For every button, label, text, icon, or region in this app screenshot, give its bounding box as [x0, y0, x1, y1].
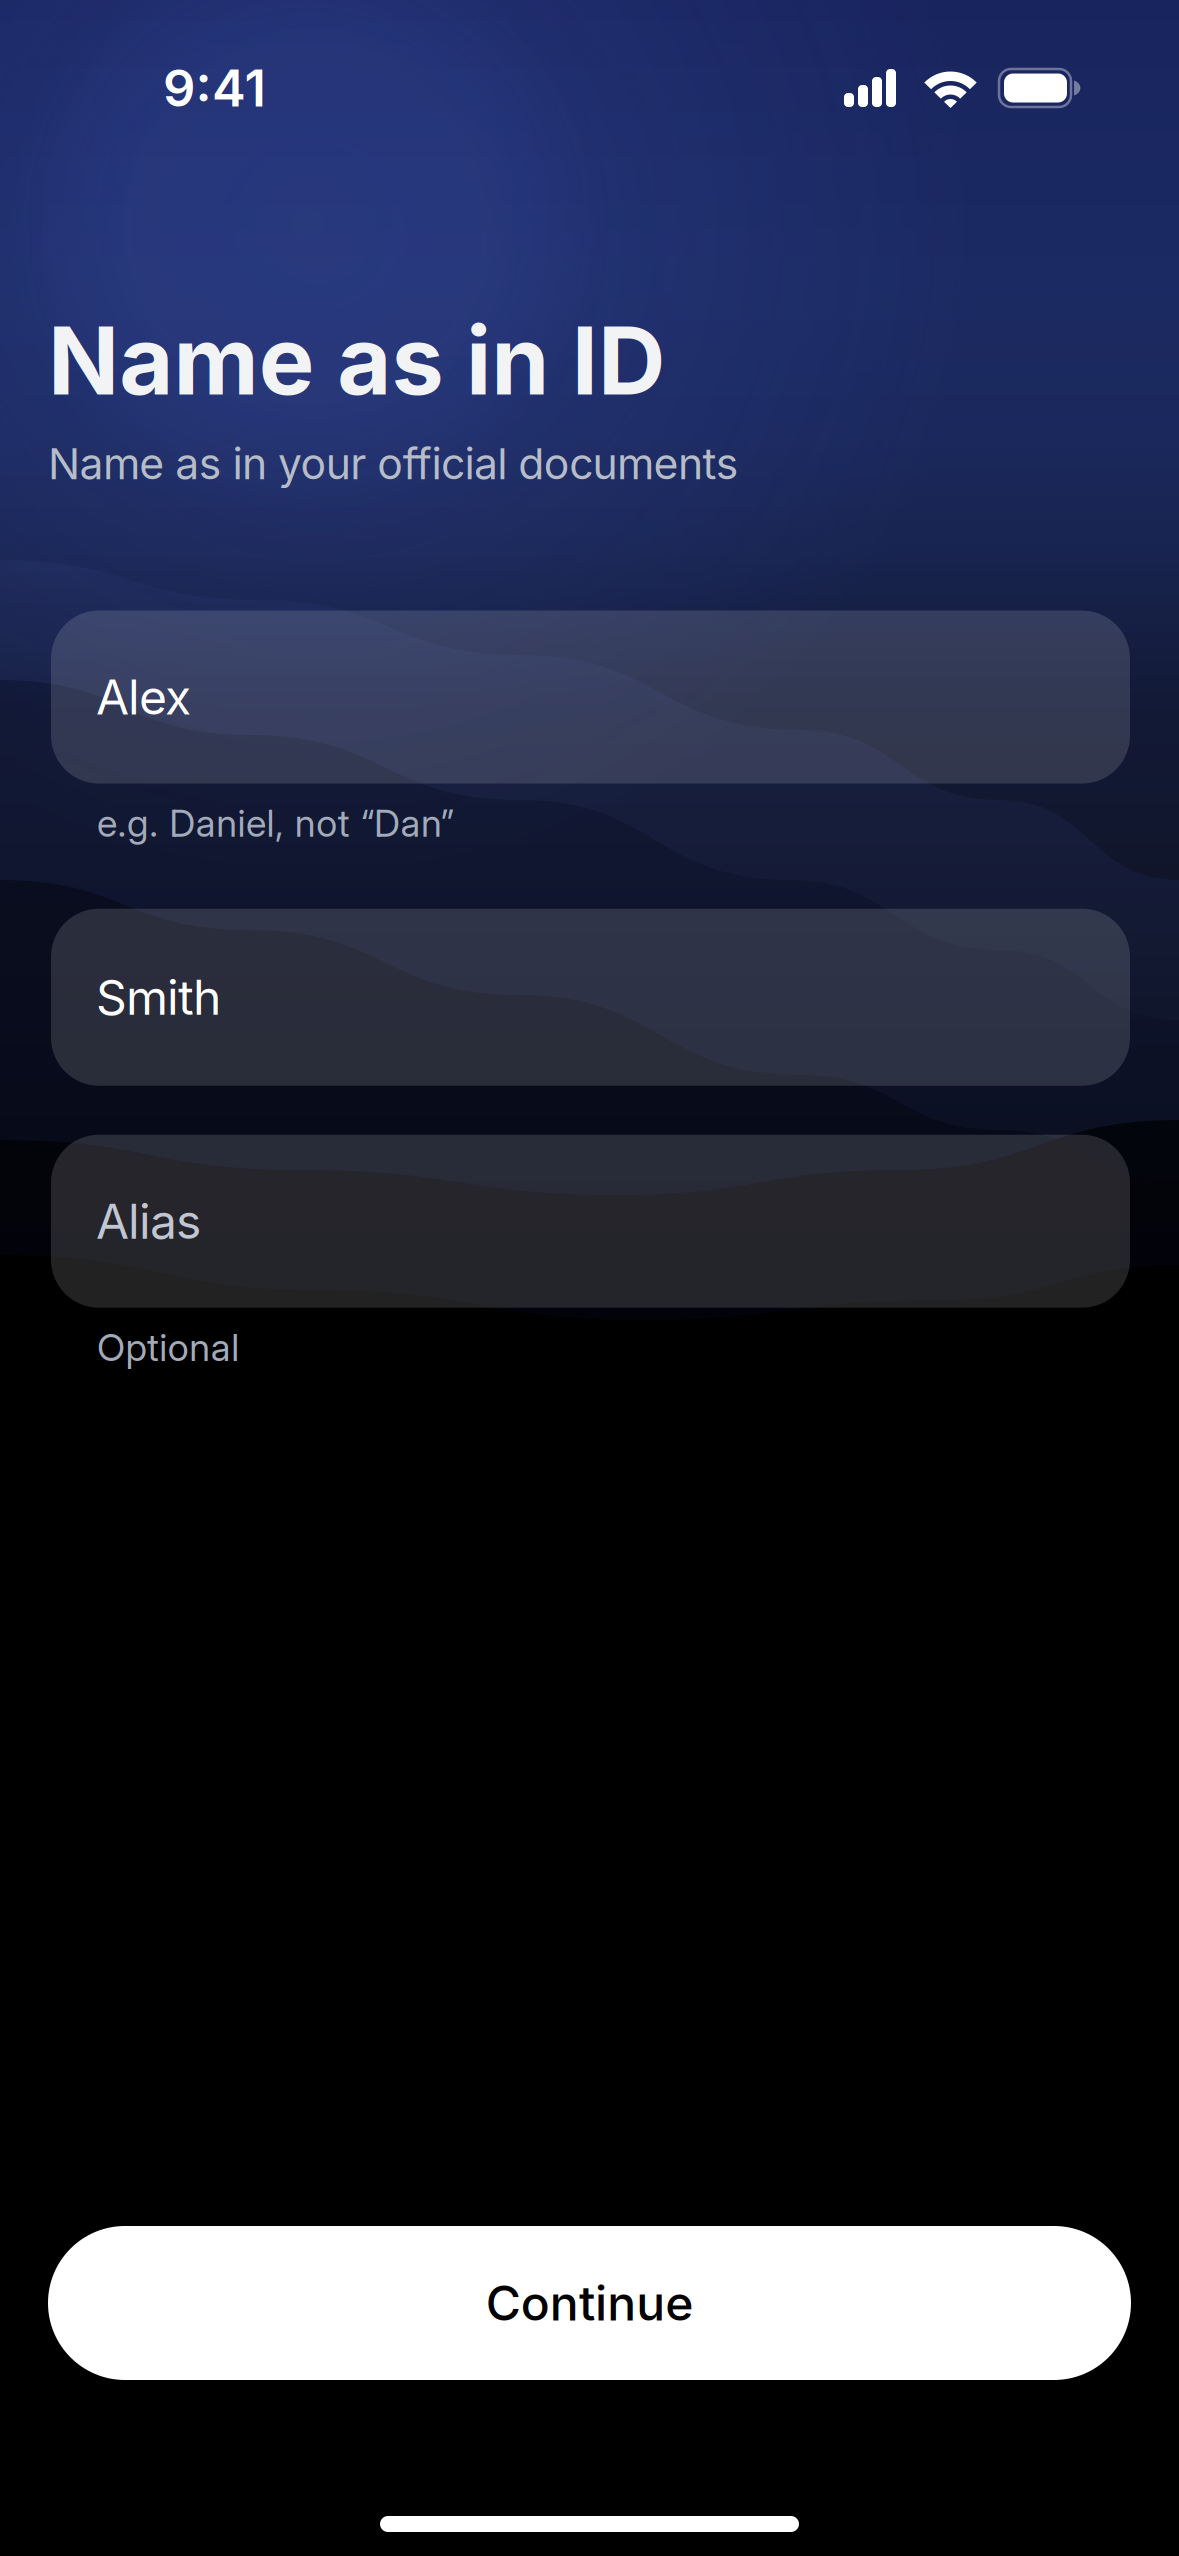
button[interactable]: Continue: [48, 2226, 1131, 2380]
staticText: e.g. Daniel, not “Dan”: [97, 801, 454, 846]
staticText: Alex: [96, 668, 191, 726]
staticText: Continue: [486, 2274, 693, 2332]
button[interactable]: Alias: [51, 1135, 1130, 1308]
staticText: Smith: [96, 968, 221, 1026]
button[interactable]: Alex: [51, 611, 1130, 784]
staticText: 9:41: [163, 57, 265, 119]
staticText: Name as in your official documents: [48, 438, 739, 489]
staticText: Name as in ID: [48, 304, 665, 417]
button[interactable]: Smith: [51, 909, 1130, 1086]
staticText: Optional: [97, 1325, 239, 1370]
staticText: Alias: [96, 1192, 201, 1250]
